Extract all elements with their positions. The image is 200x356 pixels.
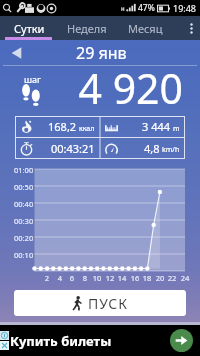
staticText: 00:40 [14,199,34,209]
button[interactable]: Previous day [4,41,28,65]
staticText: 4,8 [144,141,160,156]
staticText: ккал [79,124,95,134]
staticText: Месяц [128,21,163,36]
button[interactable]: Close ad [0,341,9,350]
button[interactable]: 168,2 [15,116,100,137]
button[interactable]: Ad info [0,331,9,340]
staticText: 00:30 [14,216,34,226]
staticText: 19:48 [173,2,197,14]
staticText: 10 [92,273,102,283]
staticText: 168,2 [48,119,77,134]
staticText: 24 [180,273,190,283]
button[interactable]: Сутки [0,16,58,40]
staticText: 12 [105,273,115,283]
staticText: шаг [24,73,41,85]
button[interactable]: ПУСК [14,290,186,316]
staticText: 6 [67,273,77,283]
staticText: 22 [167,273,177,283]
staticText: 00:20 [14,233,34,243]
staticText: ПУСК [88,294,129,313]
staticText: 00:10 [14,250,34,260]
staticText: 14 [117,273,127,283]
button[interactable]: Неделя [58,16,116,40]
staticText: km/h [162,145,180,155]
staticText: 2 [42,273,52,283]
button[interactable]: Open ad [170,329,193,352]
staticText: 3 444 [142,119,171,134]
button[interactable]: 00:43:21 [15,137,100,159]
button[interactable]: 4,8 [100,137,185,159]
staticText: 18 [142,273,152,283]
staticText: 20 [155,273,165,283]
button[interactable]: 3 444 [100,116,185,137]
staticText: 16 [130,273,140,283]
staticText: m [173,124,180,134]
staticText: 00:50 [14,182,34,192]
staticText: Неделя [67,21,107,36]
staticText: 00:43:21 [51,141,95,156]
button[interactable]: More options [183,16,200,40]
button[interactable]: Месяц [116,16,174,40]
staticText: Сутки [14,21,45,36]
staticText: 4 920 [40,60,183,110]
staticText: 29 янв [76,42,127,64]
staticText: 4 [55,273,65,283]
staticText: 01:00 [14,165,34,175]
staticText: Купить билеты [10,332,112,350]
staticText: 8 [80,273,90,283]
button[interactable]: Ad info [0,325,200,356]
staticText: 47% [138,2,155,14]
